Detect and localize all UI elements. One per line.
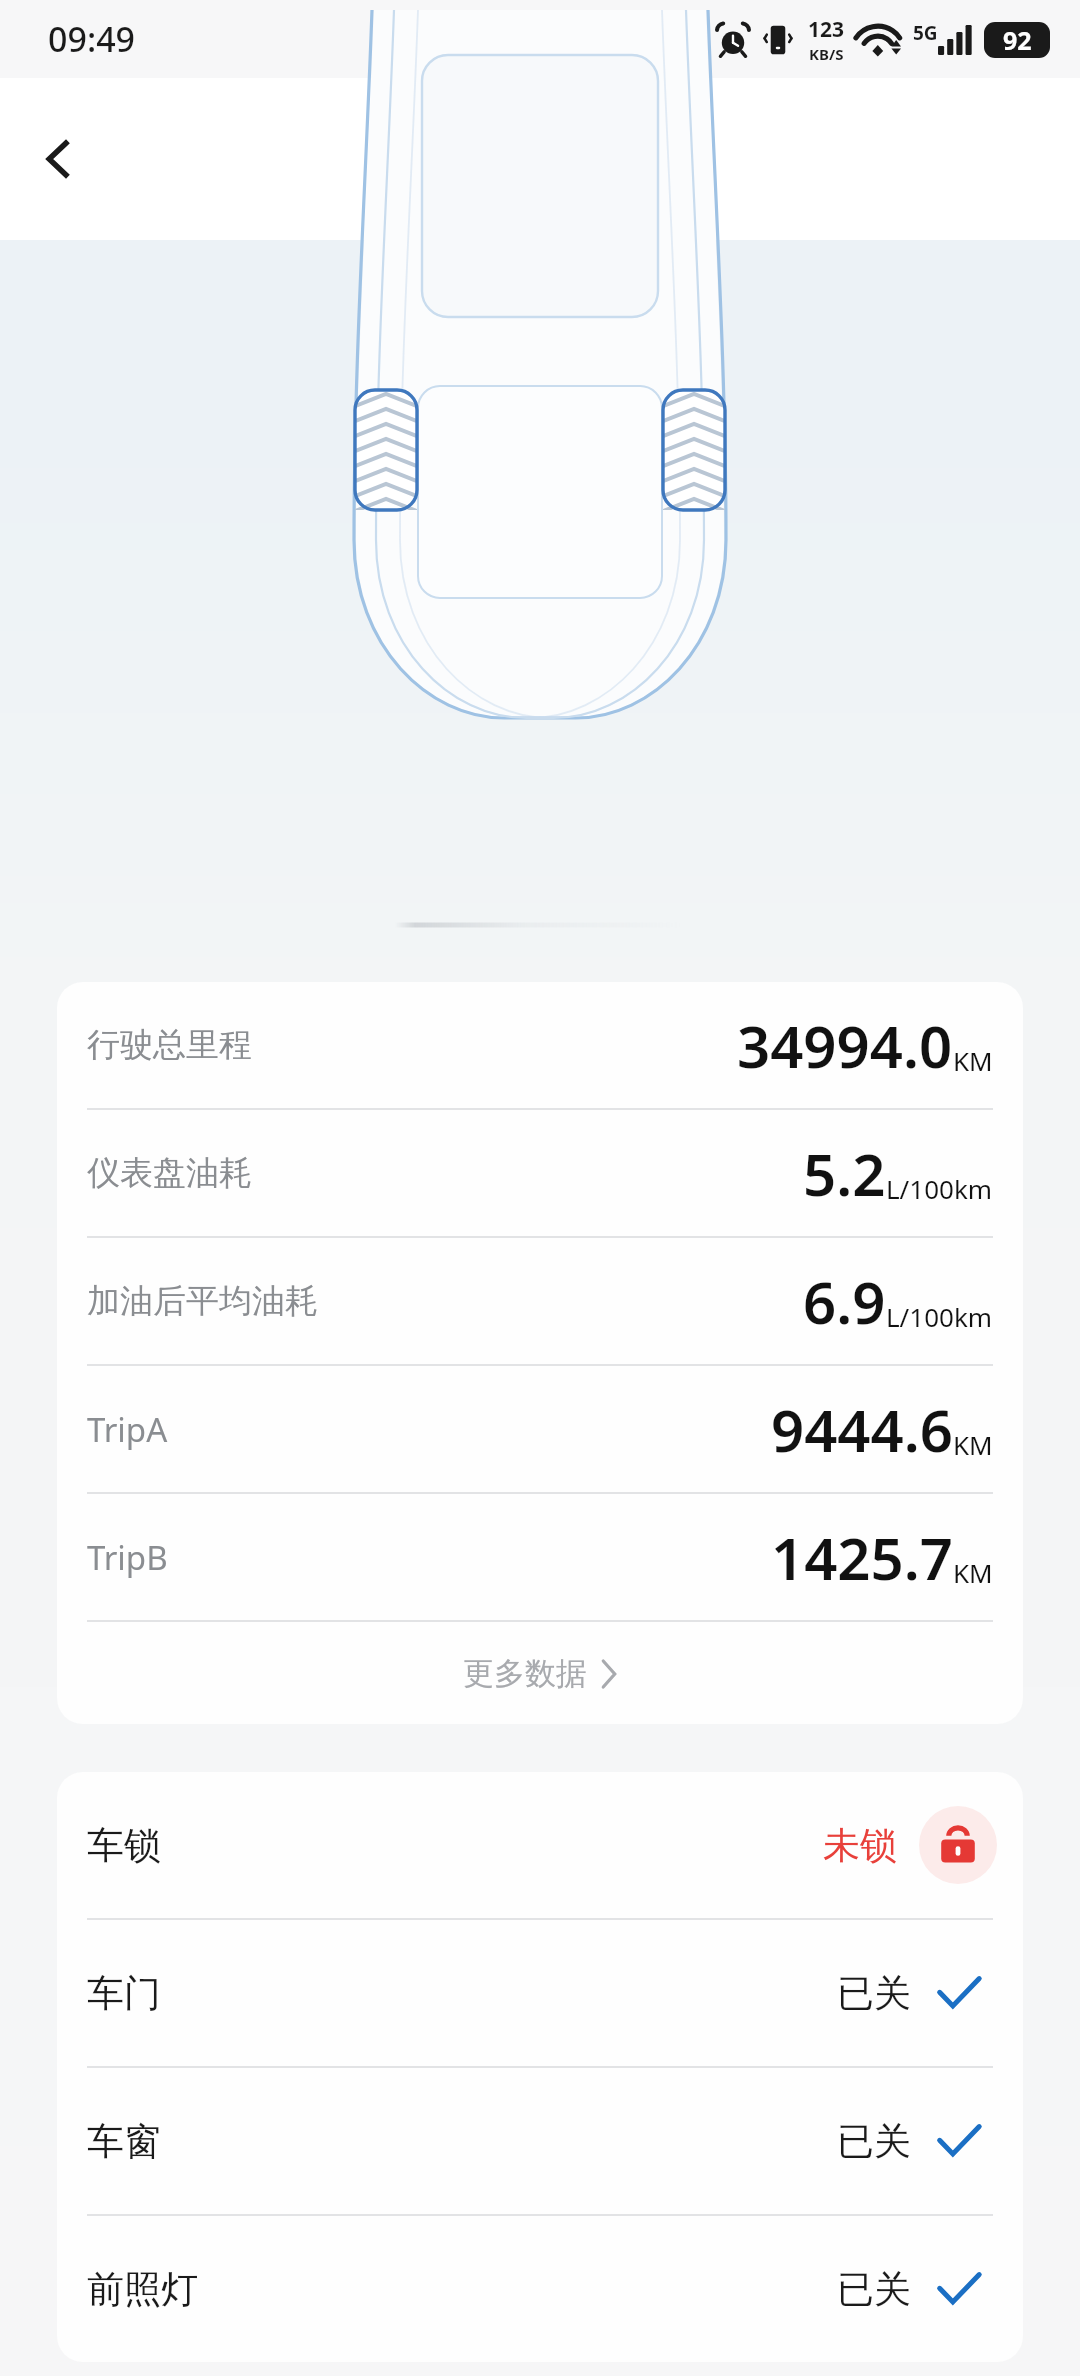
other: Unlocked [919, 1806, 997, 1884]
button[interactable]: 车门 [57, 1920, 1023, 2066]
other: Closed [937, 2271, 981, 2307]
staticText: 已关 [837, 2118, 911, 2165]
staticText: 车锁 [87, 1822, 161, 1869]
staticText: 6.9 [803, 1262, 886, 1341]
staticText: KM [953, 1555, 993, 1590]
staticText: L/100km [886, 1171, 993, 1206]
staticText: 92 [1003, 23, 1032, 57]
staticText: 已关 [837, 1970, 911, 2017]
button[interactable]: TripA [57, 1366, 1023, 1492]
staticText: 123 [808, 15, 845, 44]
staticText: 已关 [837, 2266, 911, 2313]
staticText: 仪表盘油耗 [87, 1152, 252, 1194]
staticText: TripA [87, 1407, 168, 1452]
button[interactable]: TripB [57, 1494, 1023, 1620]
staticText: TripB [87, 1535, 168, 1580]
staticText: 1425.7 [771, 1518, 953, 1597]
staticText: 车门 [87, 1970, 161, 2017]
button[interactable]: 行驶总里程 [57, 982, 1023, 1108]
button[interactable]: 加油后平均油耗 [57, 1238, 1023, 1364]
staticText: 5.2 [803, 1134, 886, 1213]
other: Closed [937, 2123, 981, 2159]
staticText: 行驶总里程 [87, 1024, 252, 1066]
staticText: 加油后平均油耗 [87, 1280, 318, 1322]
other: Closed [937, 1975, 981, 2011]
staticText: 5G [913, 20, 938, 46]
staticText: 09:49 [48, 16, 136, 62]
button[interactable]: 车锁 [57, 1772, 1023, 1918]
button[interactable]: 车窗 [57, 2068, 1023, 2214]
staticText: 前照灯 [87, 2266, 198, 2313]
staticText: 34994.0 [737, 1006, 953, 1085]
staticText: KB/S [809, 44, 844, 64]
button[interactable]: Back [14, 115, 102, 203]
staticText: L/100km [886, 1299, 993, 1334]
staticText: 未锁 [823, 1822, 897, 1869]
button[interactable]: 前照灯 [57, 2216, 1023, 2362]
staticText: KM [953, 1427, 993, 1462]
button[interactable]: 仪表盘油耗 [57, 1110, 1023, 1236]
staticText: 9444.6 [771, 1390, 953, 1469]
staticText: KM [953, 1043, 993, 1078]
staticText: 车窗 [87, 2118, 161, 2165]
staticText: 更多数据 [463, 1654, 587, 1693]
button[interactable]: 更多数据 [57, 1622, 1023, 1724]
